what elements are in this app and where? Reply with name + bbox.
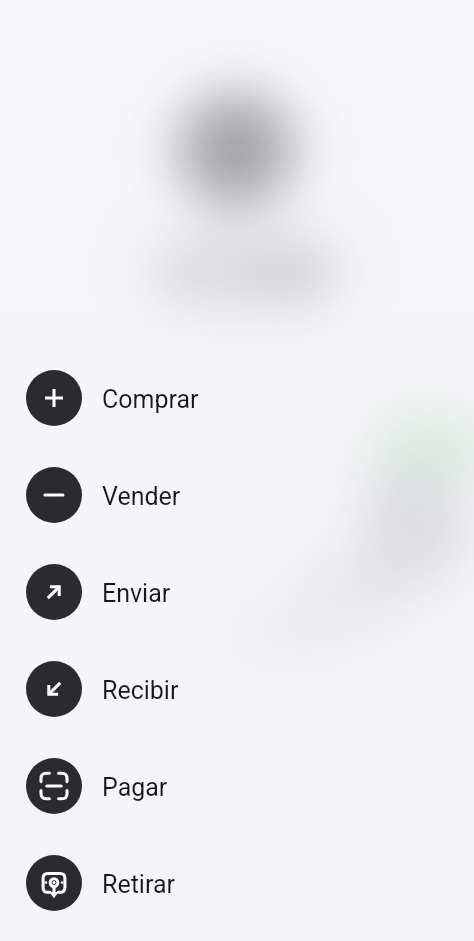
- staticText: Pagar: [102, 773, 168, 802]
- button[interactable]: Recibir: [26, 661, 82, 717]
- button[interactable]: Recibir: [0, 640, 474, 737]
- button[interactable]: Retirar: [26, 855, 82, 911]
- staticText: Recibir: [102, 676, 179, 705]
- button[interactable]: Pagar: [26, 758, 82, 814]
- staticText: Vender: [102, 482, 181, 511]
- staticText: Enviar: [102, 579, 171, 608]
- button[interactable]: Enviar: [0, 543, 474, 640]
- button[interactable]: Pagar: [0, 737, 474, 834]
- staticText: Retirar: [102, 870, 175, 899]
- button[interactable]: Comprar: [26, 370, 82, 426]
- staticText: Comprar: [102, 385, 199, 414]
- button[interactable]: Vender: [0, 446, 474, 543]
- button[interactable]: Retirar: [0, 834, 474, 931]
- button[interactable]: Comprar: [0, 349, 474, 446]
- button[interactable]: Vender: [26, 467, 82, 523]
- button[interactable]: Enviar: [26, 564, 82, 620]
